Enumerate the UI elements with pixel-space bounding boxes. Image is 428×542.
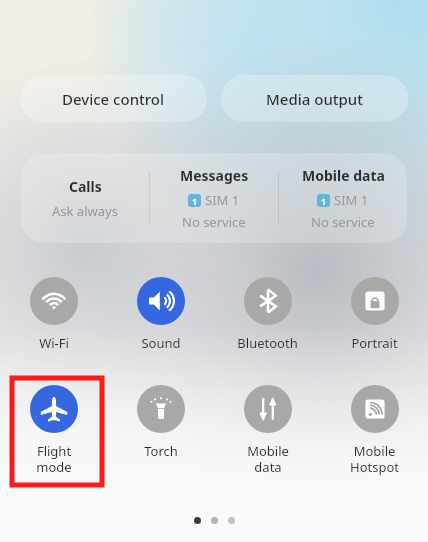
button[interactable]: Messages <box>150 153 278 243</box>
staticText: Mobile data <box>302 166 385 185</box>
button[interactable]: Calls <box>21 153 149 243</box>
button[interactable]: Device control <box>20 75 207 122</box>
staticText: Torch <box>144 442 178 460</box>
button[interactable]: Media output <box>221 75 408 122</box>
staticText: 1 <box>321 195 327 207</box>
staticText: Ask always <box>52 202 118 220</box>
staticText: Messages <box>180 166 249 185</box>
button[interactable]: Mobile data <box>214 378 321 475</box>
button[interactable]: Flight mode <box>0 378 107 475</box>
button[interactable]: Wi-Fi <box>0 270 107 352</box>
staticText: No service <box>311 213 375 231</box>
button[interactable]: Torch <box>107 378 214 460</box>
staticText: Mobile data <box>247 442 289 475</box>
staticText: Portrait <box>351 334 398 352</box>
button[interactable]: Portrait <box>321 270 428 352</box>
staticText: Media output <box>266 89 363 109</box>
staticText: Mobile Hotspot <box>350 442 399 475</box>
staticText: Flight mode <box>36 442 72 475</box>
button[interactable]: Bluetooth <box>214 270 321 352</box>
staticText: Calls <box>69 177 102 196</box>
staticText: SIM 1 <box>205 191 240 209</box>
staticText: Bluetooth <box>237 334 298 352</box>
staticText: Device control <box>62 89 165 109</box>
staticText: SIM 1 <box>334 191 369 209</box>
staticText: No service <box>182 213 246 231</box>
button[interactable]: Mobile data <box>279 153 407 243</box>
staticText: 1 <box>192 195 198 207</box>
button[interactable]: Mobile Hotspot <box>321 378 428 475</box>
staticText: Sound <box>141 334 181 352</box>
button[interactable]: Sound <box>107 270 214 352</box>
staticText: Wi-Fi <box>39 334 69 352</box>
